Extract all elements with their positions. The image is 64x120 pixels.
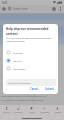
staticText: Help improve recommended content [6,27,52,35]
button[interactable]: More options [58,7,62,11]
button[interactable]: Updates [51,105,64,113]
button[interactable]: Neutral [6,57,56,63]
staticText: Contribute [40,111,50,113]
button[interactable]: Search [7,6,13,12]
staticText: Submit [45,87,54,91]
button[interactable]: Submit [43,86,56,92]
staticText: Are you satisfied with the recommended c… [6,36,54,43]
staticText: Explore [3,111,10,113]
button[interactable]: Satisfied [6,49,56,55]
staticText: Satisfied [13,51,23,54]
staticText: Cancel [30,87,39,91]
button[interactable]: Contribute [38,105,51,113]
staticText: Commute [14,111,23,113]
button[interactable]: Unsatisfied [6,65,56,71]
staticText: 9:41 [2,1,8,5]
staticText: model weights around 1.2M parameters for… [1,95,46,98]
staticText: Unsatisfied [13,67,26,70]
button[interactable]: Commute [12,105,25,113]
button[interactable]: Add place [1,6,7,12]
staticText: Additional Feedback [8,81,31,84]
staticText: while a user tailors half of small tunin… [6,99,43,102]
staticText: Neutral [13,59,22,62]
button[interactable]: Additional Feedback [6,79,56,86]
staticText: NLLT [1,99,6,102]
staticText: Saved [29,111,35,113]
button[interactable]: Account [52,7,56,11]
button[interactable]: Explore [0,105,12,113]
staticText: Updates [54,111,62,113]
staticText: Search here [13,7,28,11]
button[interactable]: Cancel [28,86,41,92]
button[interactable]: Saved [25,105,38,113]
